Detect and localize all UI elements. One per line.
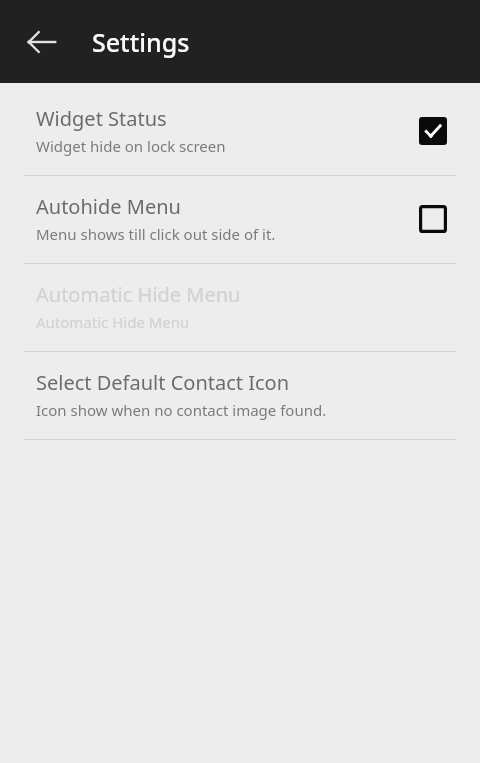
staticText: Select Default Contact Icon (36, 369, 290, 396)
button[interactable]: Widget Status (0, 84, 480, 175)
staticText: Widget hide on lock screen (36, 136, 226, 156)
staticText: Automatic Hide Menu (36, 281, 241, 308)
staticText: Autohide Menu (36, 193, 181, 220)
staticText: Settings (92, 25, 190, 59)
button[interactable]: Back (14, 14, 70, 70)
staticText: Menu shows till click out side of it. (36, 224, 276, 244)
other: Unchecked (419, 205, 447, 233)
button[interactable]: Autohide Menu (0, 176, 480, 263)
other: Checked (419, 117, 447, 145)
staticText: Icon show when no contact image found. (36, 400, 327, 420)
button: Automatic Hide Menu (0, 264, 480, 351)
staticText: Widget Status (36, 105, 167, 132)
button[interactable]: Select Default Contact Icon (0, 352, 480, 439)
staticText: Automatic Hide Menu (36, 312, 190, 332)
